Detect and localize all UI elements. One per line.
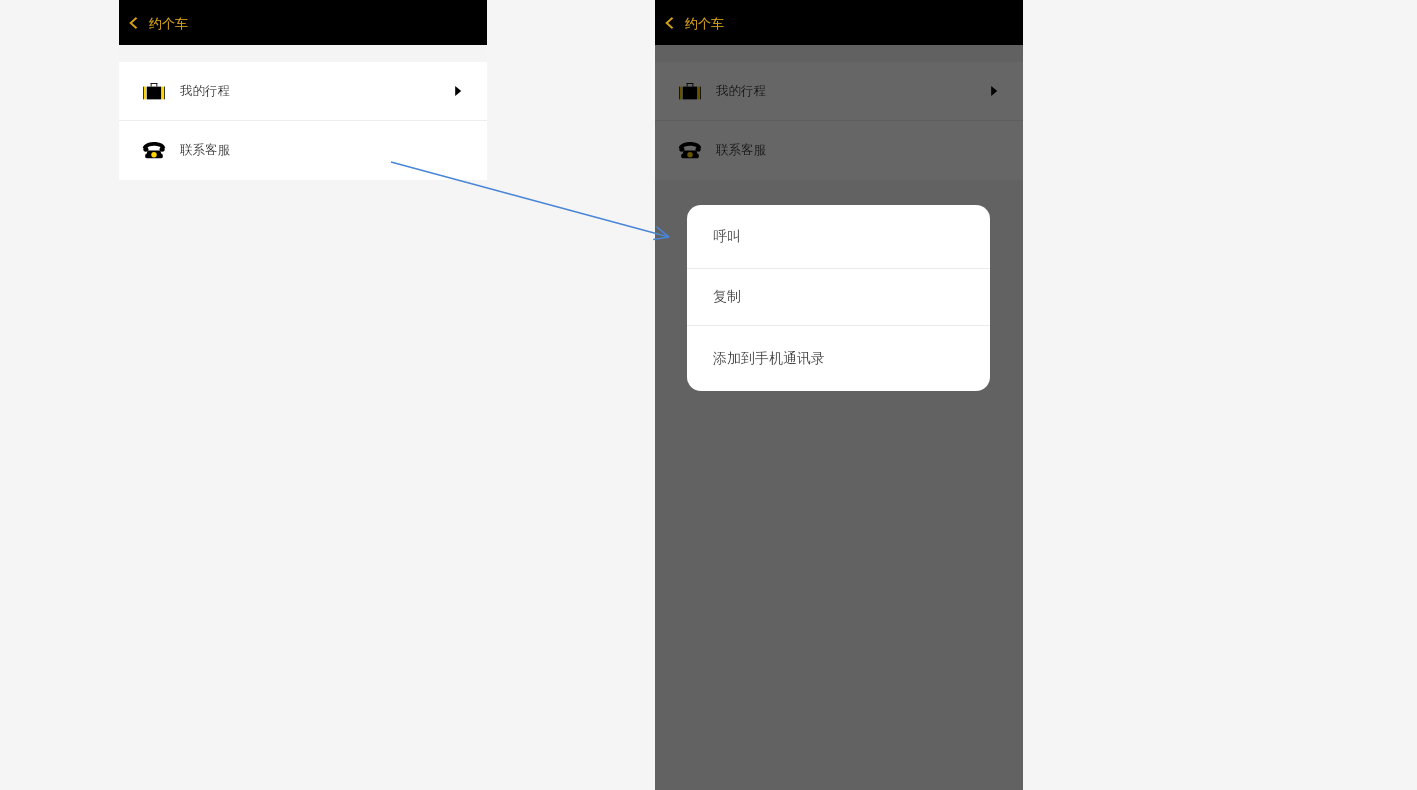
staticText: 约个车 [685,15,724,31]
staticText: 复制 [713,288,741,306]
staticText: 呼叫 [713,228,741,246]
staticText: 约个车 [149,15,188,31]
staticText: 我的行程 [716,83,766,99]
button[interactable]: 联系客服 [119,121,487,179]
staticText: 联系客服 [180,142,230,158]
button[interactable]: 添加到手机通讯录 [687,326,990,391]
button[interactable]: 我的行程 [119,62,487,120]
button[interactable]: 复制 [687,269,990,325]
staticText: 我的行程 [180,83,230,99]
button[interactable]: 我的行程 [655,62,1023,120]
staticText: 添加到手机通讯录 [713,350,825,368]
staticText: 联系客服 [716,142,766,158]
button[interactable]: Back [119,0,149,45]
button[interactable]: Back [655,0,685,45]
button[interactable]: 呼叫 [687,205,990,268]
button[interactable]: 联系客服 [655,121,1023,179]
